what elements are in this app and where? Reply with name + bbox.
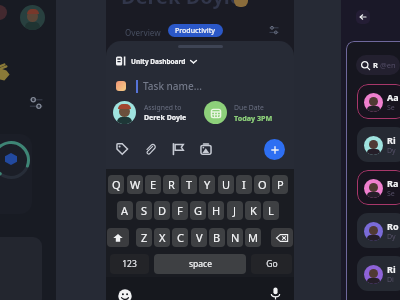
button[interactable]: K [245, 201, 261, 220]
button[interactable]: Image [198, 141, 214, 157]
staticText: Y [204, 177, 211, 192]
button[interactable]: H [208, 201, 224, 220]
button[interactable]: Task name... [114, 77, 204, 95]
staticText: Aa [387, 91, 399, 103]
staticText: Derek Doyle [144, 113, 187, 123]
staticText: B [213, 230, 221, 245]
staticText: Dy [387, 146, 396, 156]
staticText: Unity Dashboard [131, 57, 186, 66]
staticText: Q [112, 177, 121, 192]
staticText: O [258, 177, 267, 192]
button[interactable]: Y [199, 175, 215, 194]
button[interactable]: Back [356, 10, 370, 24]
button[interactable]: Overview [123, 25, 163, 40]
staticText: space [189, 258, 212, 270]
button[interactable]: M [245, 228, 261, 247]
button[interactable]: Ri [357, 127, 400, 162]
button[interactable]: G [190, 201, 206, 220]
staticText: Task name... [143, 79, 202, 93]
staticText: Ro [387, 220, 399, 232]
staticText: L [268, 203, 274, 218]
button[interactable]: A [117, 201, 133, 220]
button[interactable]: Filter [269, 25, 279, 35]
staticText: E [150, 177, 157, 192]
staticText: D [158, 203, 167, 218]
button[interactable]: 123 [110, 254, 149, 274]
staticText: G [194, 203, 203, 218]
button[interactable]: R [356, 55, 400, 75]
button[interactable]: Tag [114, 141, 130, 157]
staticText: @en [378, 60, 396, 70]
staticText: Se [387, 103, 395, 113]
button[interactable]: C [172, 228, 188, 247]
button[interactable]: Backspace [271, 228, 293, 247]
staticText: Z [141, 230, 148, 245]
staticText: X [159, 230, 166, 245]
staticText: N [231, 230, 240, 245]
button[interactable]: O [254, 175, 270, 194]
button[interactable]: B [209, 228, 225, 247]
button[interactable]: Go [251, 254, 292, 274]
staticText: I [242, 177, 246, 192]
staticText: U [222, 177, 231, 192]
staticText: Derek Doyle [121, 0, 242, 10]
staticText: P [277, 177, 284, 192]
button[interactable]: Add task [264, 139, 285, 160]
button[interactable]: P [272, 175, 288, 194]
button[interactable]: Aa [357, 84, 400, 119]
button[interactable]: Productivity [168, 24, 223, 37]
staticText: A [121, 203, 129, 218]
staticText: V [196, 230, 203, 245]
staticText: M [248, 230, 258, 245]
staticText: R [168, 177, 175, 192]
staticText: Se [387, 189, 395, 199]
staticText: Go [266, 258, 278, 270]
staticText: Assigned to [144, 103, 182, 112]
staticText: T [186, 177, 193, 192]
button[interactable]: L [263, 201, 279, 220]
staticText: Di [387, 275, 394, 285]
button[interactable]: Voice input [269, 287, 282, 300]
staticText: S [141, 203, 148, 218]
staticText: Productivity [175, 26, 216, 36]
staticText: 123 [122, 258, 137, 270]
button[interactable]: I [236, 175, 252, 194]
staticText: H [212, 203, 221, 218]
staticText: W [130, 177, 141, 192]
button[interactable]: E [145, 175, 161, 194]
staticText: C [177, 230, 184, 245]
button[interactable]: Q [108, 175, 124, 194]
button[interactable]: Unity Dashboard [114, 54, 199, 68]
button[interactable]: Shift [107, 228, 129, 247]
button[interactable]: Emoji [118, 289, 132, 300]
button[interactable]: T [181, 175, 197, 194]
button[interactable]: Ra [357, 170, 400, 205]
staticText: F [177, 203, 183, 218]
button[interactable]: Flag [170, 141, 186, 157]
button[interactable]: Z [136, 228, 152, 247]
button[interactable]: Ro [357, 213, 400, 248]
staticText: Due Date [234, 103, 264, 112]
button[interactable]: S [136, 201, 152, 220]
button[interactable]: R [163, 175, 179, 194]
staticText: R [373, 60, 378, 70]
button[interactable]: N [227, 228, 243, 247]
staticText: K [250, 203, 257, 218]
button[interactable]: space [154, 254, 246, 274]
staticText: Dy [387, 232, 396, 242]
staticText: Today 3PM [234, 113, 273, 123]
button[interactable]: V [191, 228, 207, 247]
button[interactable]: F [172, 201, 188, 220]
button[interactable]: Ri [357, 256, 400, 291]
button[interactable]: D [154, 201, 170, 220]
staticText: Ri [387, 134, 396, 146]
button[interactable]: Attach [142, 141, 158, 157]
button[interactable]: U [218, 175, 234, 194]
button[interactable]: J [227, 201, 243, 220]
staticText: Ri [387, 263, 396, 275]
button[interactable]: X [154, 228, 170, 247]
button[interactable]: W [127, 175, 143, 194]
staticText: J [233, 203, 237, 218]
staticText: Ra [387, 177, 399, 189]
